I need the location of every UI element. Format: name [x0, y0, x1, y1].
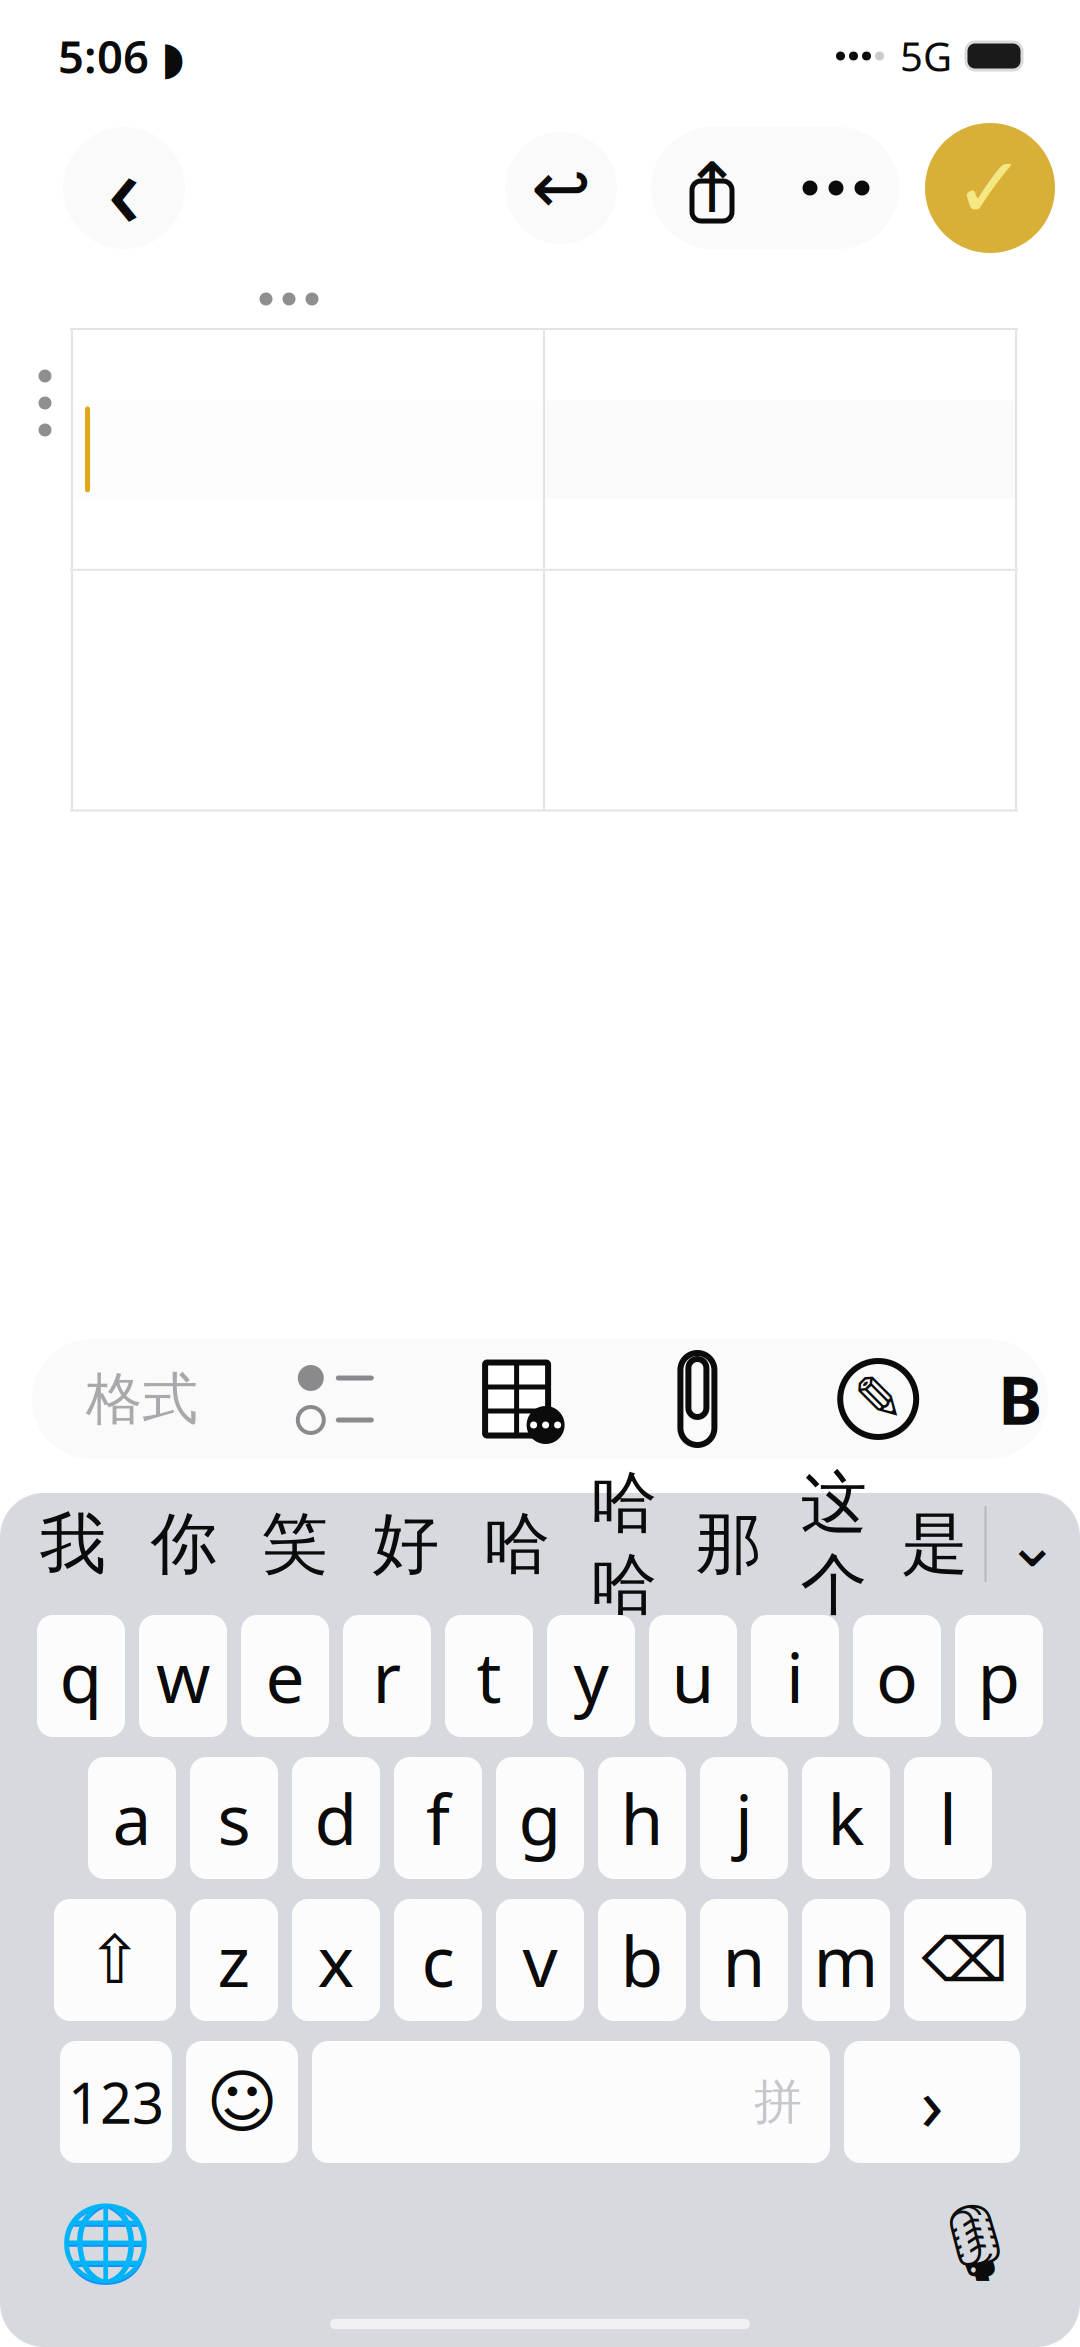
button[interactable]: 123 [60, 2041, 172, 2163]
button[interactable]: 这个 [782, 1495, 885, 1593]
staticText: b [620, 1914, 663, 2006]
staticText: 拼 [754, 2072, 802, 2131]
button[interactable]: h [598, 1757, 686, 1879]
button[interactable]: w [139, 1615, 227, 1737]
button[interactable]: Back [48, 127, 200, 249]
button[interactable]: Row options [20, 328, 70, 478]
staticText: r [372, 1630, 401, 1722]
staticText: 这个 [800, 1462, 867, 1626]
button[interactable]: p [955, 1615, 1043, 1737]
button[interactable]: Share [651, 127, 773, 249]
staticText: 好 [372, 1503, 439, 1585]
staticText: 我 [39, 1503, 106, 1585]
button[interactable]: More options [773, 127, 899, 249]
button[interactable]: j [700, 1757, 788, 1879]
staticText: t [476, 1630, 501, 1722]
staticText: z [217, 1914, 250, 2006]
staticText: e [265, 1630, 304, 1722]
staticText: 🎙 [927, 2200, 1022, 2286]
button[interactable]: Emoji [186, 2041, 298, 2163]
staticText: i [786, 1630, 804, 1722]
staticText: o [876, 1630, 918, 1722]
button[interactable]: Bold [992, 1343, 1048, 1455]
staticText: p [977, 1630, 1020, 1722]
button[interactable]: f [394, 1757, 482, 1879]
button[interactable]: 笑 [239, 1495, 350, 1593]
button[interactable]: z [190, 1899, 278, 2021]
staticText: ☺ [206, 2063, 278, 2141]
button[interactable]: n [700, 1899, 788, 2021]
button[interactable]: s [190, 1757, 278, 1879]
staticText: ⇧ [87, 1922, 143, 1998]
staticText: n [722, 1914, 765, 2006]
button[interactable]: u [649, 1615, 737, 1737]
button[interactable]: x [292, 1899, 380, 2021]
staticText: k [827, 1772, 864, 1864]
button[interactable]: o [853, 1615, 941, 1737]
button[interactable]: q [37, 1615, 125, 1737]
button[interactable]: Undo [505, 127, 617, 249]
button[interactable]: 我 [17, 1495, 128, 1593]
button[interactable]: y [547, 1615, 635, 1737]
staticText: c [421, 1914, 454, 2006]
button[interactable]: i [751, 1615, 839, 1737]
button[interactable]: Column options [246, 284, 332, 314]
staticText: s [217, 1772, 250, 1864]
button[interactable]: k [802, 1757, 890, 1879]
button[interactable]: Attach [630, 1343, 764, 1455]
button[interactable]: 好 [350, 1495, 461, 1593]
button[interactable]: 那 [675, 1495, 782, 1593]
staticText: x [317, 1914, 354, 2006]
staticText: a [112, 1772, 151, 1864]
staticText: y [573, 1630, 608, 1722]
staticText: ✓ [954, 140, 1026, 236]
staticText: w [156, 1630, 210, 1722]
button[interactable]: t [445, 1615, 533, 1737]
staticText: 5:06 ◗ [58, 26, 185, 86]
staticText: j [735, 1772, 753, 1864]
button[interactable]: Shift [54, 1899, 176, 2021]
button[interactable]: r [343, 1615, 431, 1737]
button[interactable]: g [496, 1757, 584, 1879]
staticText: 笑 [261, 1503, 328, 1585]
button[interactable]: 哈哈 [572, 1495, 675, 1593]
button[interactable]: Table [450, 1343, 584, 1455]
staticText: d [314, 1772, 357, 1864]
button[interactable]: d [292, 1757, 380, 1879]
staticText: 哈 [483, 1503, 550, 1585]
button[interactable]: c [394, 1899, 482, 2021]
button[interactable]: More candidates [986, 1495, 1078, 1593]
button[interactable]: 是 [885, 1495, 984, 1593]
button[interactable]: a [88, 1757, 176, 1879]
staticText: q [59, 1630, 102, 1722]
button[interactable]: Switch keyboard [40, 2191, 170, 2295]
staticText: ‹ [107, 121, 140, 255]
staticText: ↑ [683, 149, 741, 227]
staticText: 你 [150, 1503, 217, 1585]
staticText: ⌫ [921, 1925, 1008, 1995]
button[interactable]: e [241, 1615, 329, 1737]
staticText: ⌄ [1005, 1508, 1059, 1580]
button[interactable]: Dictate [910, 2191, 1040, 2295]
staticText: ✎ [853, 1364, 904, 1434]
button[interactable]: Return [844, 2041, 1020, 2163]
staticText: 123 [68, 2065, 164, 2139]
staticText: › [920, 2052, 943, 2152]
button[interactable]: l [904, 1757, 992, 1879]
button[interactable]: v [496, 1899, 584, 2021]
staticText: 是 [901, 1503, 968, 1585]
button[interactable]: m [802, 1899, 890, 2021]
button[interactable]: Checklist [269, 1343, 403, 1455]
button[interactable]: Markup [811, 1343, 945, 1455]
button[interactable]: Space [312, 2041, 830, 2163]
button[interactable]: Done [925, 123, 1055, 253]
staticText: f [426, 1772, 450, 1864]
button[interactable]: 哈 [461, 1495, 572, 1593]
button[interactable]: 格式 [62, 1343, 222, 1455]
button[interactable]: b [598, 1899, 686, 2021]
button[interactable]: 你 [128, 1495, 239, 1593]
staticText: v [522, 1914, 557, 2006]
staticText: u [671, 1630, 714, 1722]
button[interactable]: Delete [904, 1899, 1026, 2021]
staticText: g [518, 1772, 561, 1864]
